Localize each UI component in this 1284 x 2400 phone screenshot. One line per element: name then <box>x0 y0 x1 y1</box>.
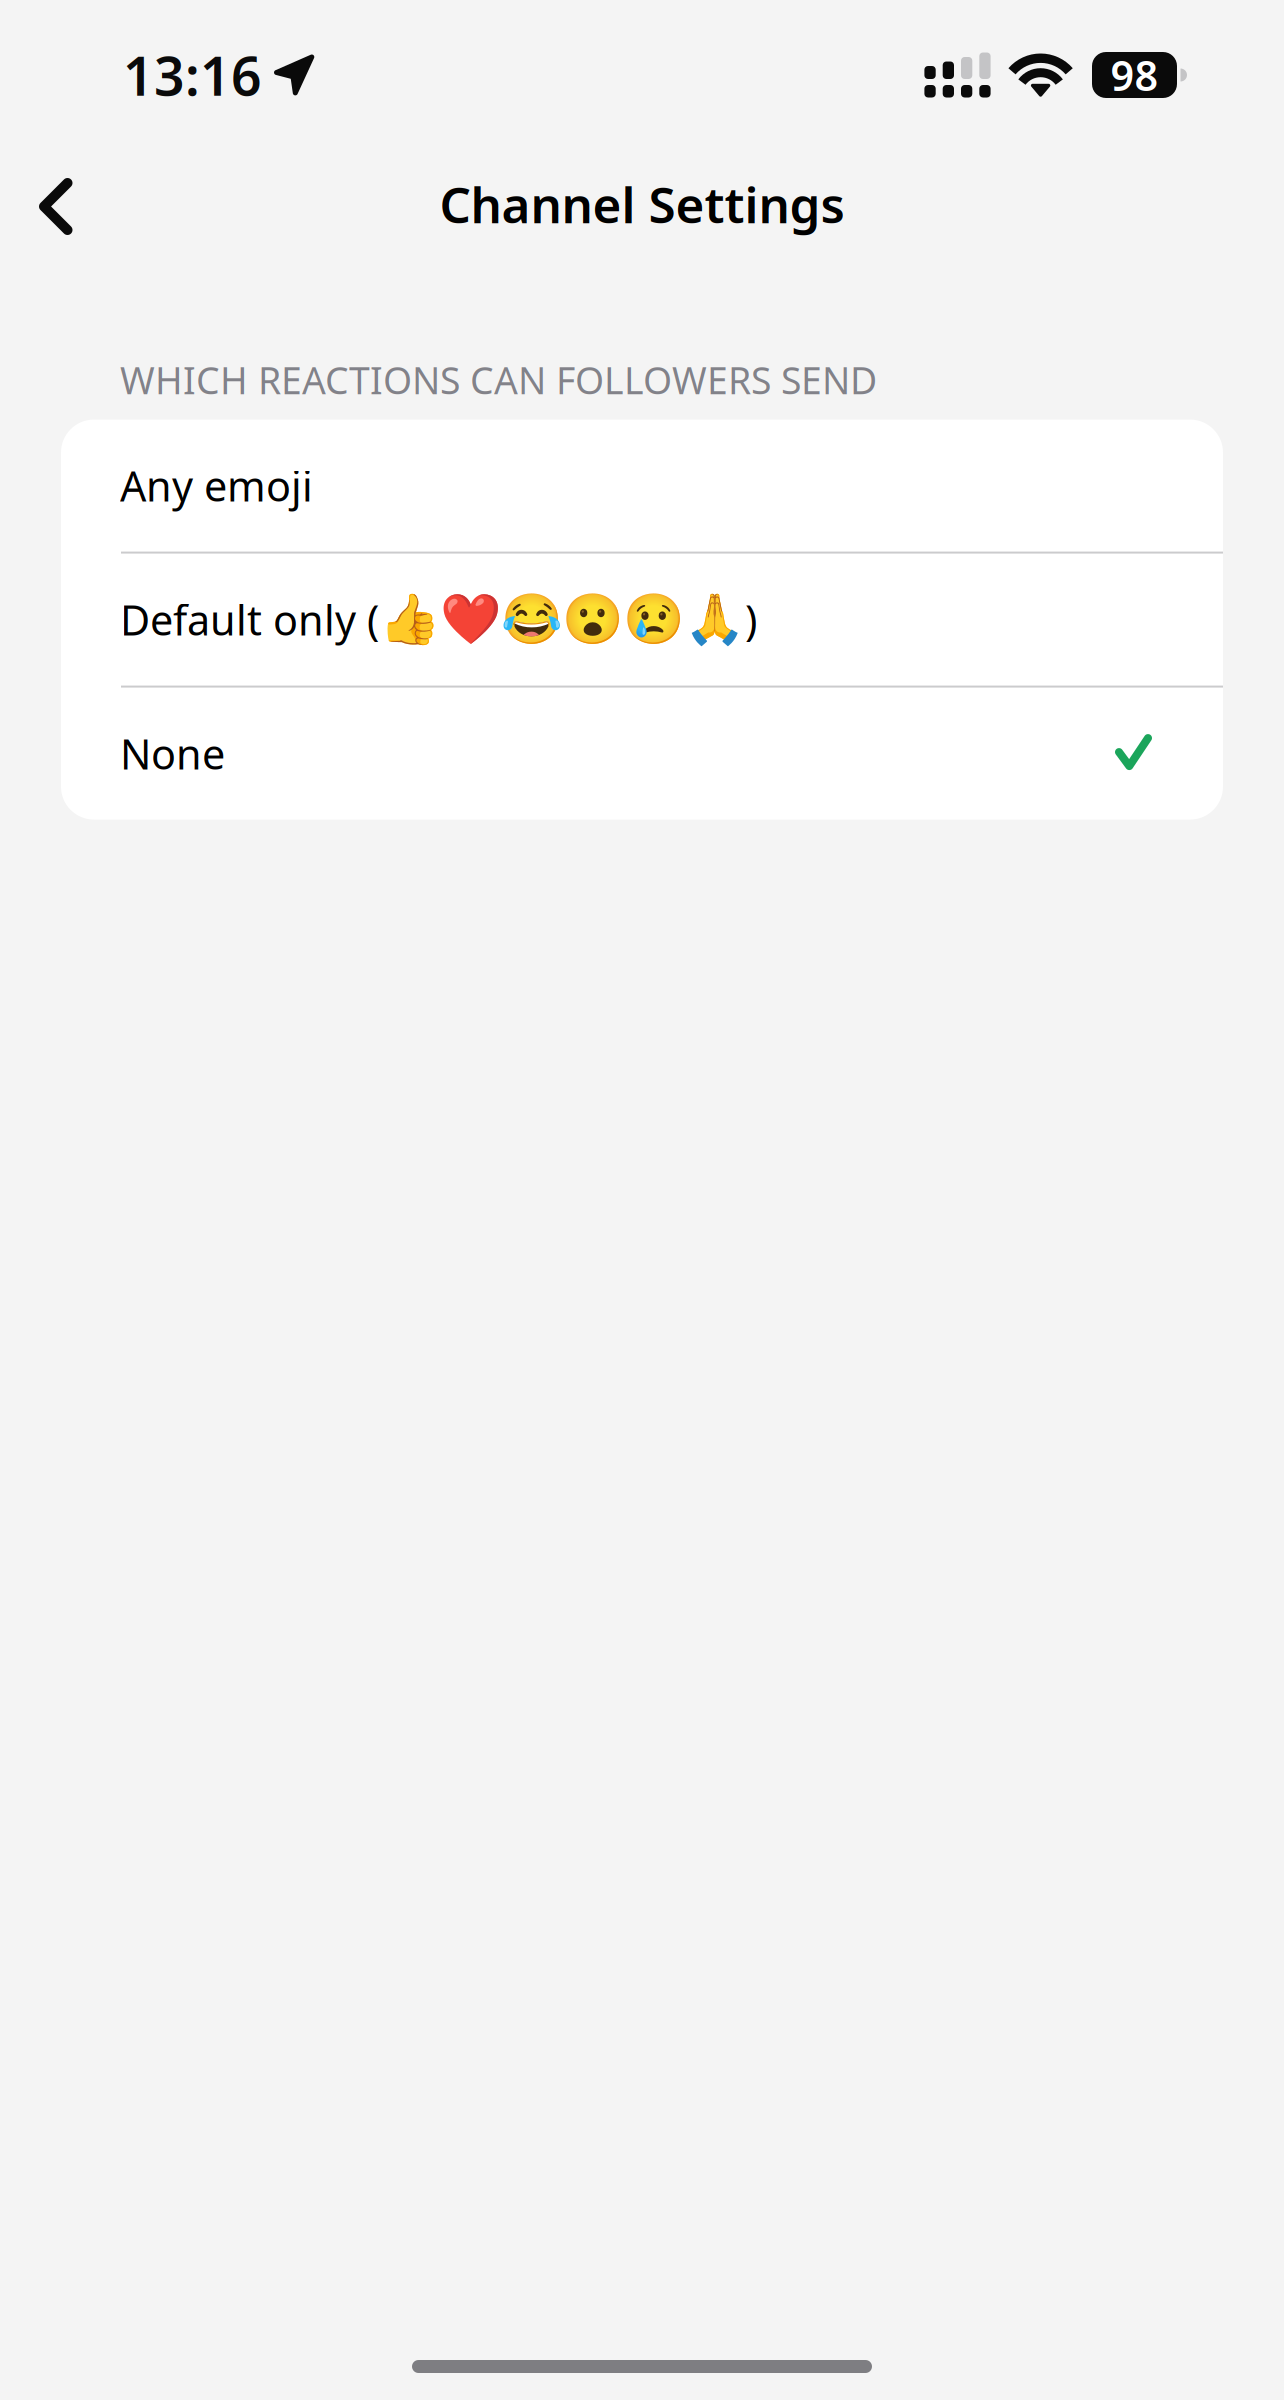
staticText: WHICH REACTIONS CAN FOLLOWERS SEND <box>120 355 877 405</box>
staticText: Channel Settings <box>439 171 844 237</box>
staticText: 👍❤️😂😮😢🙏 <box>379 591 745 648</box>
staticText: 98 <box>1110 48 1158 102</box>
staticText: 13:16 <box>123 40 262 110</box>
staticText: ) <box>745 592 757 647</box>
button[interactable]: None <box>61 688 1223 820</box>
button[interactable]: Back <box>0 150 68 258</box>
button[interactable]: Default only ( <box>61 554 1223 686</box>
staticText: Any emoji <box>120 458 313 513</box>
staticText: None <box>120 726 225 781</box>
button[interactable]: Any emoji <box>61 420 1223 552</box>
staticText: Default only ( <box>120 592 379 647</box>
